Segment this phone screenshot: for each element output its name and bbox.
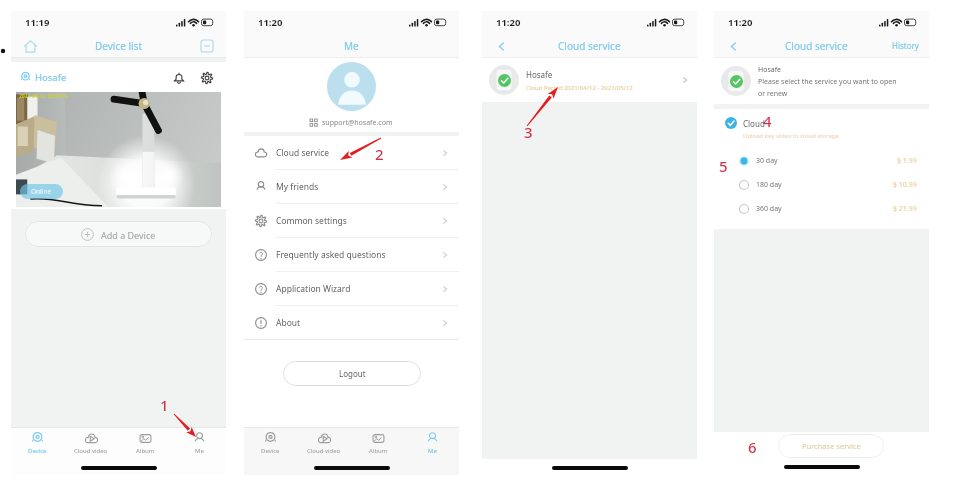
staticText: 11:20 <box>728 16 753 29</box>
staticText: Cloud video <box>74 447 108 455</box>
staticText: Frequently asked questions <box>276 249 386 261</box>
staticText: $ 10.99 <box>893 180 917 190</box>
button[interactable]: Add a Device <box>25 221 212 247</box>
staticText: Logout <box>339 368 366 379</box>
button[interactable]: Device <box>11 428 64 459</box>
staticText: Hosafe <box>35 71 67 84</box>
staticText: 5 <box>719 156 728 176</box>
button[interactable]: Device settings <box>198 69 215 86</box>
staticText: Me <box>195 447 204 455</box>
button[interactable]: Cloud service <box>244 136 459 169</box>
staticText: 360 day <box>756 204 782 214</box>
button[interactable]: 180 day <box>714 173 929 197</box>
button[interactable]: Frequently asked questions <box>244 238 459 271</box>
button[interactable]: About <box>244 306 459 339</box>
button[interactable]: Album <box>118 428 172 459</box>
staticText: Cloud video <box>307 447 341 455</box>
button[interactable]: Cloud video <box>297 428 351 459</box>
staticText: 11:19 <box>25 16 50 29</box>
button[interactable]: Purchase service <box>778 434 884 458</box>
staticText: Cloud <box>743 118 765 129</box>
staticText: 30 day <box>756 156 778 166</box>
staticText: Hosafe <box>758 65 782 75</box>
staticText: Common settings <box>276 215 347 227</box>
staticText: Device <box>28 447 47 455</box>
staticText: History <box>892 40 919 51</box>
staticText: Application Wizard <box>276 283 351 295</box>
staticText: Device <box>261 447 280 455</box>
staticText: 6 <box>748 437 757 457</box>
button[interactable]: Hosafe <box>482 58 697 102</box>
button[interactable]: History <box>890 37 921 54</box>
staticText: 1 <box>160 395 169 415</box>
staticText: 3 <box>524 122 533 142</box>
button[interactable]: Me <box>405 428 459 459</box>
staticText: Me <box>344 39 359 53</box>
staticText: Please select the service you want to op… <box>758 77 897 98</box>
staticText: About <box>276 317 301 329</box>
staticText: Add a Device <box>101 229 156 241</box>
button[interactable]: My friends <box>244 170 459 203</box>
staticText: 180 day <box>756 180 782 190</box>
button[interactable]: Common settings <box>244 204 459 237</box>
staticText: Cloud service <box>558 39 621 53</box>
button[interactable]: Alarm <box>170 69 187 86</box>
staticText: 4 <box>763 111 772 131</box>
button[interactable]: Cloud <box>714 117 929 129</box>
button[interactable]: Cloud video <box>64 428 118 459</box>
staticText: 11:20 <box>258 16 283 29</box>
staticText: 2021-04-12 23:22:14 <box>19 93 68 100</box>
staticText: $ 21.99 <box>893 204 917 214</box>
button[interactable]: Application Wizard <box>244 272 459 305</box>
button[interactable]: Logout <box>283 361 421 386</box>
button[interactable]: Back <box>490 35 512 57</box>
button[interactable]: Album <box>351 428 405 459</box>
staticText: Upload key video to cloud storage <box>743 132 839 140</box>
staticText: Online <box>31 187 52 196</box>
staticText: $ 1.99 <box>897 156 917 166</box>
staticText: support@hosafe.com <box>322 118 393 128</box>
button[interactable]: 360 day <box>714 197 929 221</box>
staticText: Cloud service <box>785 39 848 53</box>
staticText: My friends <box>276 181 319 193</box>
button[interactable]: Device <box>244 428 297 459</box>
button[interactable]: Edit list <box>196 35 218 57</box>
staticText: Hosafe <box>526 69 553 80</box>
staticText: Device list <box>95 39 142 53</box>
button[interactable]: Me <box>172 428 226 459</box>
button[interactable]: Home <box>19 35 41 57</box>
staticText: Album <box>136 447 155 455</box>
button[interactable]: Back <box>722 35 744 57</box>
staticText: Cloud service <box>276 147 330 159</box>
staticText: Me <box>428 447 437 455</box>
button[interactable]: 30 day <box>714 149 929 173</box>
staticText: Purchase service <box>802 441 861 451</box>
staticText: Cloud Period:2021/04/12 - 2021/05/12 <box>526 84 633 92</box>
staticText: Album <box>369 447 388 455</box>
staticText: 2 <box>375 144 384 164</box>
staticText: 11:20 <box>496 16 521 29</box>
